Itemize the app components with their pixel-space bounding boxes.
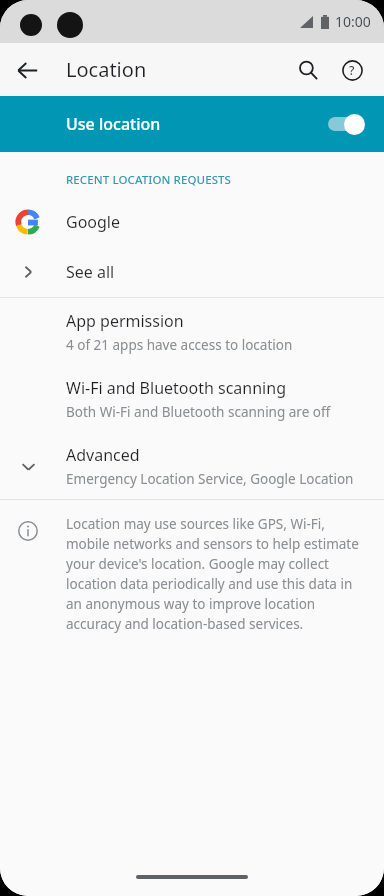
staticText: Both Wi-Fi and Bluetooth scanning are of…: [66, 403, 331, 421]
button[interactable]: Search: [286, 48, 330, 92]
button[interactable]: Google: [0, 197, 384, 247]
staticText: ?: [349, 62, 355, 78]
button[interactable]: Wi-Fi and Bluetooth scanning: [0, 365, 384, 432]
staticText: 4 of 21 apps have access to location: [66, 336, 293, 354]
staticText: 10:00: [335, 12, 371, 31]
button[interactable]: Help: [330, 48, 374, 92]
staticText: App permission: [66, 310, 184, 332]
staticText: Google: [66, 211, 121, 233]
button[interactable]: See all: [0, 247, 384, 297]
staticText: Location may use sources like GPS, Wi-Fi…: [66, 515, 368, 633]
button[interactable]: App permission: [0, 298, 384, 365]
staticText: Location: [66, 56, 147, 83]
button[interactable]: Use location: [0, 96, 384, 152]
button[interactable]: Back: [6, 49, 48, 91]
staticText: Emergency Location Service, Google Locat…: [66, 470, 374, 488]
staticText: Advanced: [66, 444, 140, 466]
staticText: Wi-Fi and Bluetooth scanning: [66, 377, 286, 399]
staticText: Use location: [66, 113, 161, 135]
button[interactable]: Advanced: [0, 432, 384, 499]
staticText: RECENT LOCATION REQUESTS: [66, 172, 232, 188]
staticText: See all: [66, 261, 115, 283]
